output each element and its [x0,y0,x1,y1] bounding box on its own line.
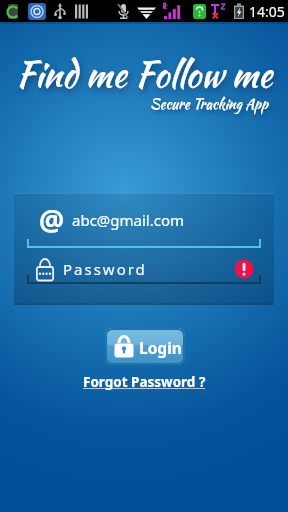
staticText: @ [39,201,65,239]
button[interactable]: @ [20,203,268,254]
button[interactable]: Password [20,258,268,298]
staticText: Password [63,259,147,279]
staticText: Login [139,337,182,358]
staticText: abc@gmail.com [72,210,185,230]
button[interactable]: Login [105,328,185,365]
staticText: Secure Tracking App [150,94,268,114]
staticText: Find me Follow me [0,49,288,100]
staticText: 14:05 [249,2,285,21]
button[interactable]: Forgot Password ? [83,373,206,391]
